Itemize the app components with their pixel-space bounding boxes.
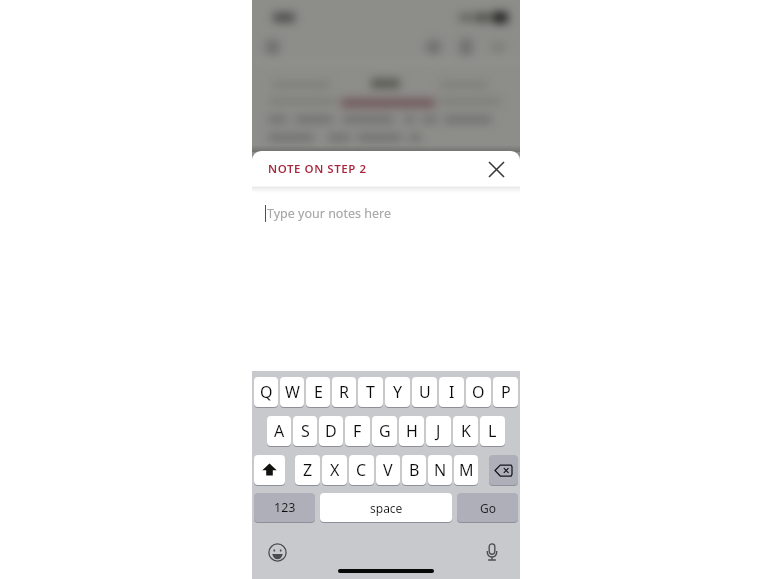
button[interactable]: T bbox=[358, 377, 383, 407]
button[interactable]: I bbox=[439, 377, 464, 407]
staticText: A bbox=[274, 420, 285, 442]
staticText: Y bbox=[393, 381, 403, 403]
button[interactable]: 123 bbox=[254, 493, 315, 522]
staticText: O bbox=[472, 381, 485, 403]
staticText: V bbox=[383, 459, 393, 481]
button[interactable]: A bbox=[267, 416, 291, 446]
staticText: NOTE ON STEP 2 bbox=[268, 161, 367, 177]
button[interactable]: H bbox=[399, 416, 424, 446]
button[interactable]: V bbox=[376, 455, 400, 485]
staticText: S bbox=[301, 420, 310, 442]
button[interactable]: Z bbox=[295, 455, 320, 485]
staticText: U bbox=[419, 381, 431, 403]
button[interactable]: Emoji bbox=[264, 539, 290, 565]
button[interactable]: R bbox=[332, 377, 356, 407]
button[interactable]: Go bbox=[457, 493, 518, 522]
button[interactable]: P bbox=[493, 377, 518, 407]
staticText: Go bbox=[480, 500, 496, 516]
staticText: J bbox=[436, 420, 441, 442]
staticText: G bbox=[379, 420, 391, 442]
staticText: F bbox=[353, 420, 362, 442]
staticText: 123 bbox=[274, 499, 296, 516]
button[interactable]: S bbox=[293, 416, 317, 446]
button[interactable]: L bbox=[480, 416, 505, 446]
staticText: P bbox=[501, 381, 511, 403]
staticText: Q bbox=[260, 381, 273, 403]
staticText: L bbox=[488, 420, 497, 442]
button[interactable]: M bbox=[454, 455, 478, 485]
button[interactable]: K bbox=[453, 416, 478, 446]
staticText: R bbox=[339, 381, 349, 403]
button[interactable]: Close bbox=[481, 154, 511, 184]
staticText: space bbox=[370, 500, 403, 516]
button[interactable]: G bbox=[372, 416, 397, 446]
staticText: Z bbox=[303, 459, 313, 481]
staticText: B bbox=[409, 459, 420, 481]
button[interactable]: X bbox=[322, 455, 347, 485]
button[interactable]: Backspace bbox=[489, 455, 518, 485]
staticText: E bbox=[314, 381, 323, 403]
button[interactable]: J bbox=[426, 416, 451, 446]
staticText: H bbox=[406, 420, 418, 442]
staticText: C bbox=[356, 459, 367, 481]
button[interactable]: F bbox=[345, 416, 370, 446]
button[interactable]: Shift bbox=[254, 455, 285, 485]
staticText: I bbox=[449, 381, 455, 403]
staticText: K bbox=[461, 420, 471, 442]
button[interactable]: N bbox=[428, 455, 452, 485]
staticText: D bbox=[325, 420, 337, 442]
button[interactable]: Dictate bbox=[479, 539, 505, 565]
button[interactable]: NOTE ON STEP 2 bbox=[268, 161, 367, 177]
staticText: Type your notes here bbox=[267, 205, 391, 222]
staticText: W bbox=[285, 381, 300, 403]
button[interactable]: Y bbox=[385, 377, 410, 407]
button[interactable]: space bbox=[320, 493, 452, 522]
button[interactable]: O bbox=[466, 377, 491, 407]
staticText: T bbox=[366, 381, 375, 403]
staticText: N bbox=[434, 459, 447, 481]
button[interactable]: D bbox=[319, 416, 343, 446]
button[interactable]: W bbox=[280, 377, 304, 407]
staticText: M bbox=[459, 459, 474, 481]
button[interactable]: E bbox=[306, 377, 330, 407]
button[interactable]: Q bbox=[254, 377, 278, 407]
button[interactable]: U bbox=[412, 377, 437, 407]
staticText: X bbox=[330, 459, 340, 481]
button[interactable]: B bbox=[402, 455, 426, 485]
button[interactable]: C bbox=[349, 455, 374, 485]
